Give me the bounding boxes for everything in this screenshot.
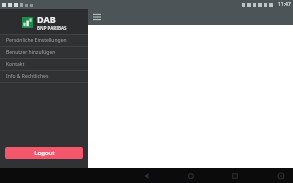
- staticText: Info & Rechtliches: [6, 73, 49, 80]
- button[interactable]: Recent apps: [228, 169, 242, 183]
- button[interactable]: Home: [184, 169, 198, 183]
- button[interactable]: Benutzer hinzufügen: [0, 47, 88, 59]
- button[interactable]: Logout: [5, 147, 83, 159]
- staticText: DAB: [37, 13, 56, 25]
- staticText: Kontakt: [6, 61, 25, 68]
- button[interactable]: Persönliche Einstellungen: [0, 35, 88, 47]
- button[interactable]: Back: [140, 169, 154, 183]
- staticText: Benutzer hinzufügen: [6, 49, 56, 56]
- staticText: Persönliche Einstellungen: [6, 37, 67, 44]
- staticText: BNP PARIBAS: [37, 25, 67, 31]
- staticText: Logout: [34, 149, 55, 157]
- button[interactable]: Screenshot: [275, 170, 287, 182]
- button[interactable]: Info & Rechtliches: [0, 71, 88, 83]
- staticText: 11:47: [278, 1, 291, 8]
- button[interactable]: Open navigation menu: [91, 11, 103, 23]
- button[interactable]: Kontakt: [0, 59, 88, 71]
